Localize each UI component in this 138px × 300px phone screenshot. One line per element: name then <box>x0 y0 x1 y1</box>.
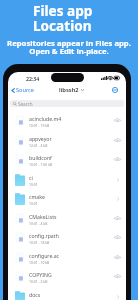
staticText: Source <box>16 86 34 94</box>
button[interactable]: Account <box>112 87 118 93</box>
button[interactable]: cmake <box>8 188 126 208</box>
staticText: configure.ac <box>29 252 60 259</box>
staticText: Files app Location <box>33 1 93 35</box>
staticText: 10:01 - 10 kB <box>29 260 50 265</box>
staticText: 10:01 - 18 kB <box>29 240 50 245</box>
staticText: 10:01 - 2 kB <box>29 279 48 284</box>
button[interactable]: Search <box>10 100 124 107</box>
button[interactable]: docs <box>8 286 126 300</box>
button[interactable]: COPYING <box>8 266 126 286</box>
staticText: 10:01 - 4 kB <box>29 221 48 226</box>
button[interactable]: buildconf <box>8 149 126 169</box>
staticText: 10:01 <box>29 182 38 187</box>
button[interactable]: appveyor <box>8 130 126 150</box>
button[interactable]: ci <box>8 169 126 189</box>
staticText: appveyor <box>29 135 52 142</box>
staticText: libssh2 <box>59 86 79 94</box>
staticText: Repositories appear in Files app. Open &… <box>0 38 138 56</box>
staticText: Search <box>18 101 33 107</box>
button[interactable]: configure.ac <box>8 247 126 267</box>
staticText: 10:01 - 1.06 kB <box>29 162 53 167</box>
button[interactable]: acinclude.m4 <box>8 110 126 130</box>
staticText: acinclude.m4 <box>29 115 62 122</box>
staticText: 22:34 <box>26 75 40 82</box>
staticText: 10:01 - 19 kB <box>29 123 50 128</box>
staticText: ci <box>29 174 33 181</box>
staticText: config.rpath <box>29 232 59 239</box>
button[interactable]: CMakeLists <box>8 208 126 228</box>
staticText: 10:01 <box>29 201 38 206</box>
button[interactable]: Source <box>11 86 34 94</box>
staticText: CMakeLists <box>29 213 57 220</box>
staticText: buildconf <box>29 154 52 161</box>
button[interactable]: config.rpath <box>8 227 126 247</box>
staticText: cmake <box>29 193 45 200</box>
staticText: docs <box>29 291 41 298</box>
staticText: COPYING <box>29 271 52 278</box>
staticText: 12:41 - 4 kB <box>29 143 48 148</box>
